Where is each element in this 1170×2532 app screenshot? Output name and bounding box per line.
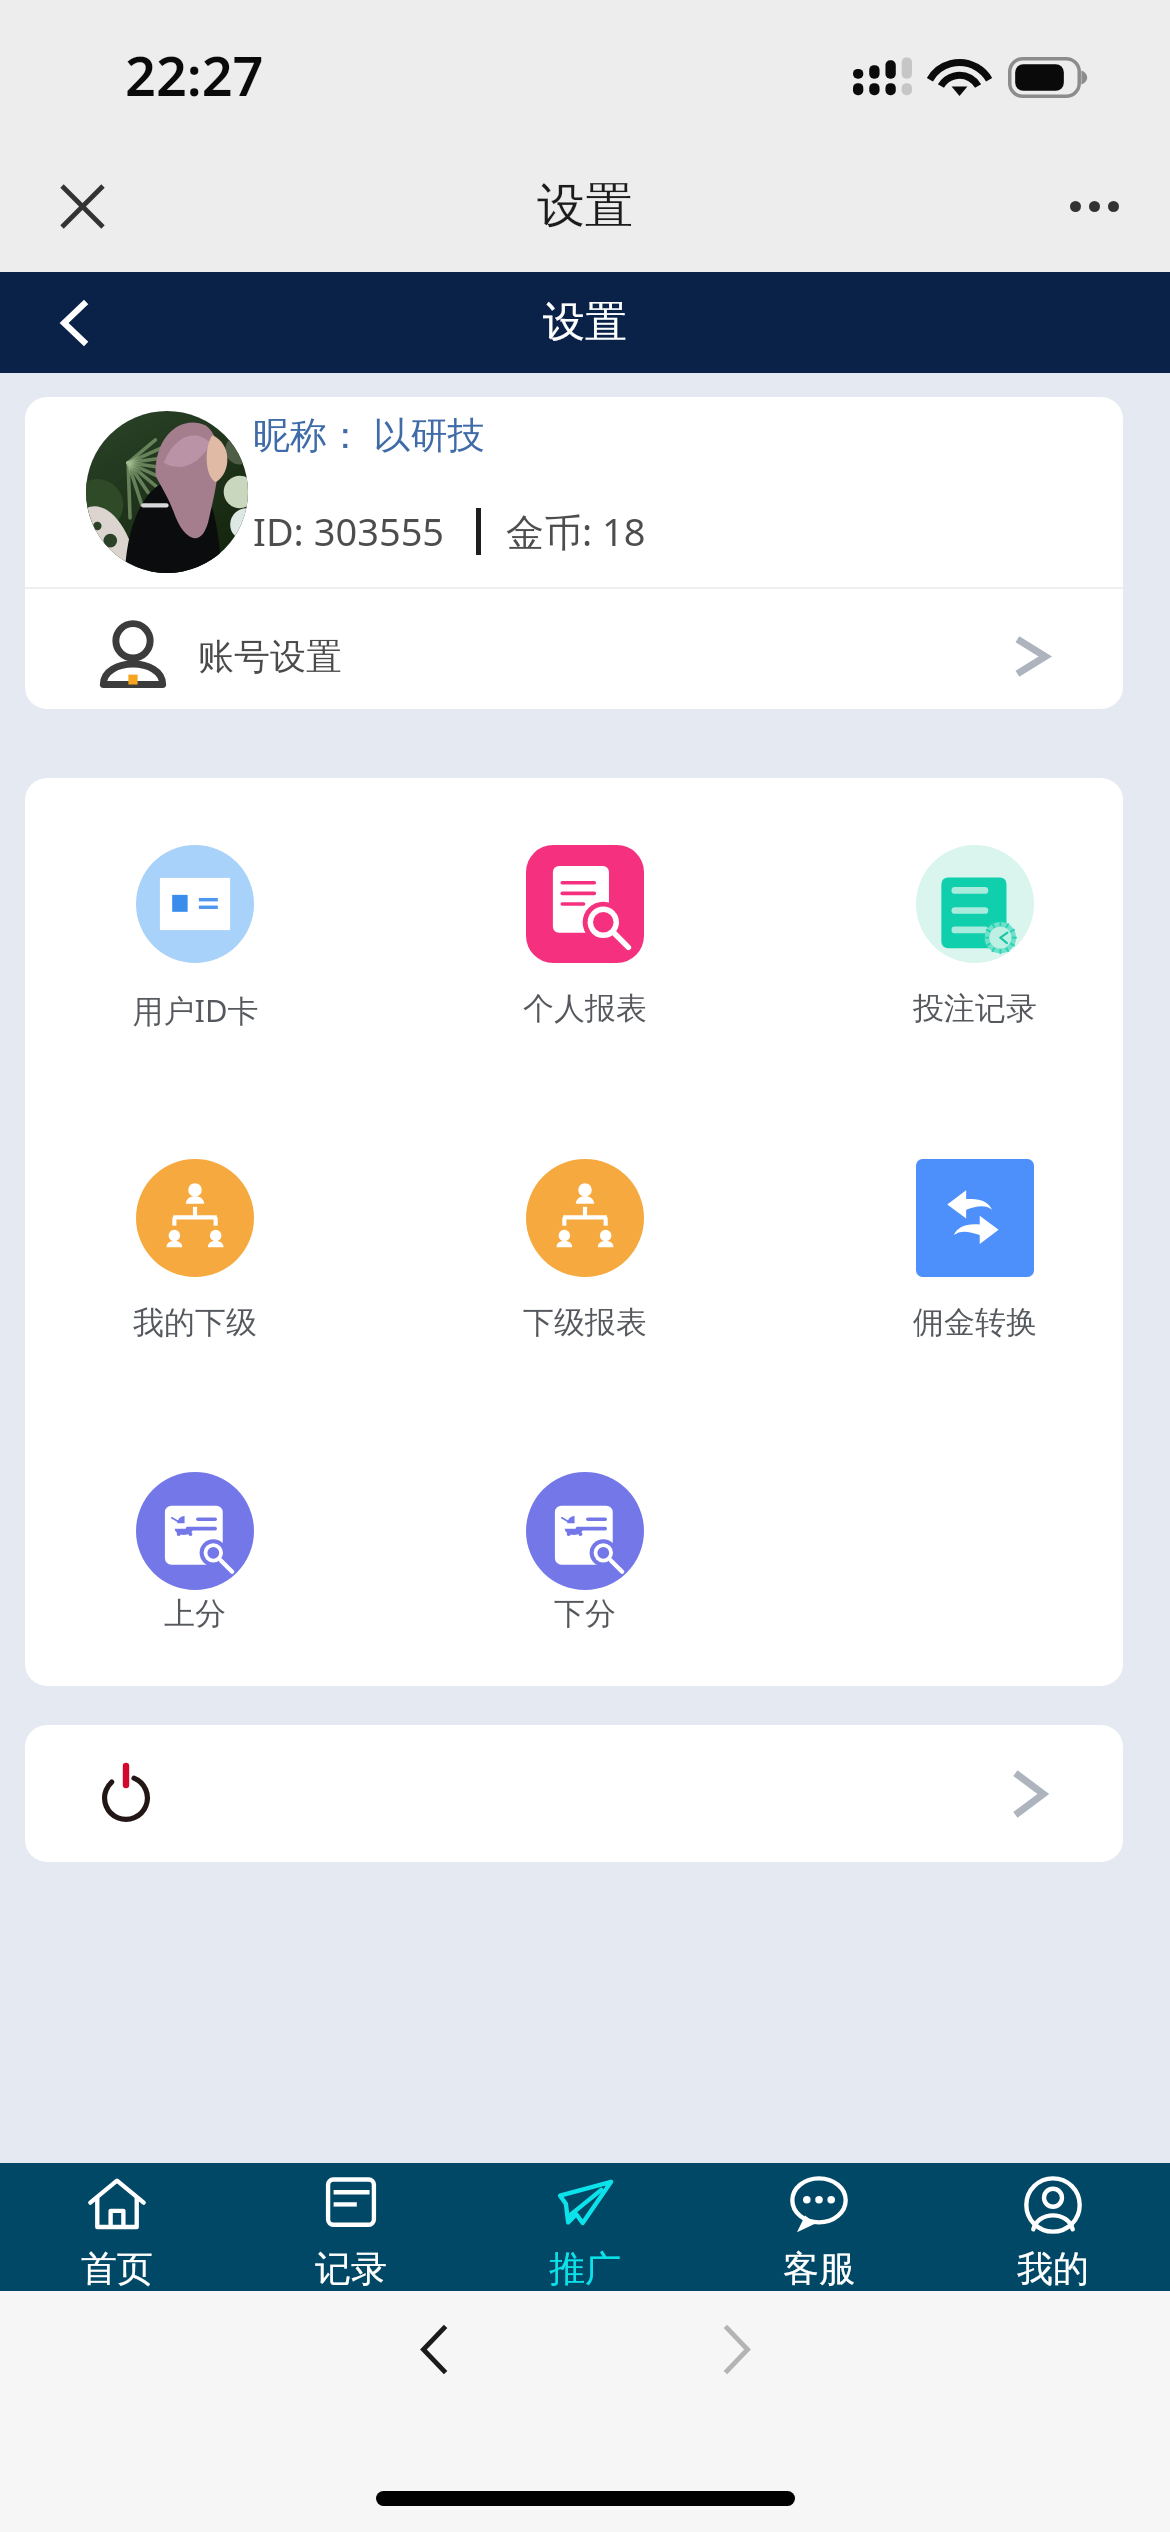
button[interactable]: Browser forward <box>698 2311 774 2387</box>
staticText: 首页 <box>81 2246 153 2291</box>
button[interactable]: 记录 <box>234 2163 468 2291</box>
staticText: 用户ID卡 <box>132 989 259 1031</box>
button[interactable]: 用户ID卡 <box>0 845 390 1031</box>
button[interactable]: 首页 <box>0 2163 234 2291</box>
button[interactable]: Close <box>42 166 122 246</box>
staticText: 设置 <box>543 296 627 349</box>
staticText: 记录 <box>315 2246 387 2291</box>
button[interactable]: 佣金转换 <box>780 1159 1170 1342</box>
staticText: 下分 <box>554 1594 616 1633</box>
staticText: 客服 <box>783 2246 855 2291</box>
button[interactable]: 推广 <box>468 2163 702 2291</box>
button[interactable]: 我的下级 <box>0 1159 390 1342</box>
staticText: 下级报表 <box>523 1303 647 1342</box>
other: Logout <box>102 1766 150 1822</box>
button[interactable]: 下级报表 <box>390 1159 780 1342</box>
staticText: 上分 <box>164 1594 226 1633</box>
button[interactable]: 我的 <box>936 2163 1170 2291</box>
button[interactable]: Back <box>30 279 118 367</box>
staticText: 账号设置 <box>198 634 342 679</box>
button[interactable]: Logout <box>25 1725 1123 1862</box>
staticText: 22:27 <box>125 38 264 112</box>
button[interactable]: 账号设置 <box>25 589 1123 709</box>
button[interactable]: 投注记录 <box>780 845 1170 1028</box>
staticText: 推广 <box>549 2246 621 2291</box>
button[interactable]: Browser back <box>396 2311 472 2387</box>
staticText: 我的 <box>1017 2246 1089 2291</box>
staticText: 投注记录 <box>913 989 1037 1028</box>
staticText: 设置 <box>537 176 633 236</box>
staticText: 佣金转换 <box>913 1303 1037 1342</box>
button[interactable]: 上分 <box>0 1472 390 1633</box>
button[interactable]: 个人报表 <box>390 845 780 1028</box>
staticText: 金币: 18 <box>506 505 646 557</box>
staticText: 个人报表 <box>523 989 647 1028</box>
staticText: 昵称： 以研技 <box>253 408 485 459</box>
button[interactable]: More options <box>1054 166 1134 246</box>
button[interactable]: 客服 <box>702 2163 936 2291</box>
staticText: 我的下级 <box>133 1303 257 1342</box>
staticText: ID: 303555 <box>253 505 445 557</box>
button[interactable]: 下分 <box>390 1472 780 1633</box>
